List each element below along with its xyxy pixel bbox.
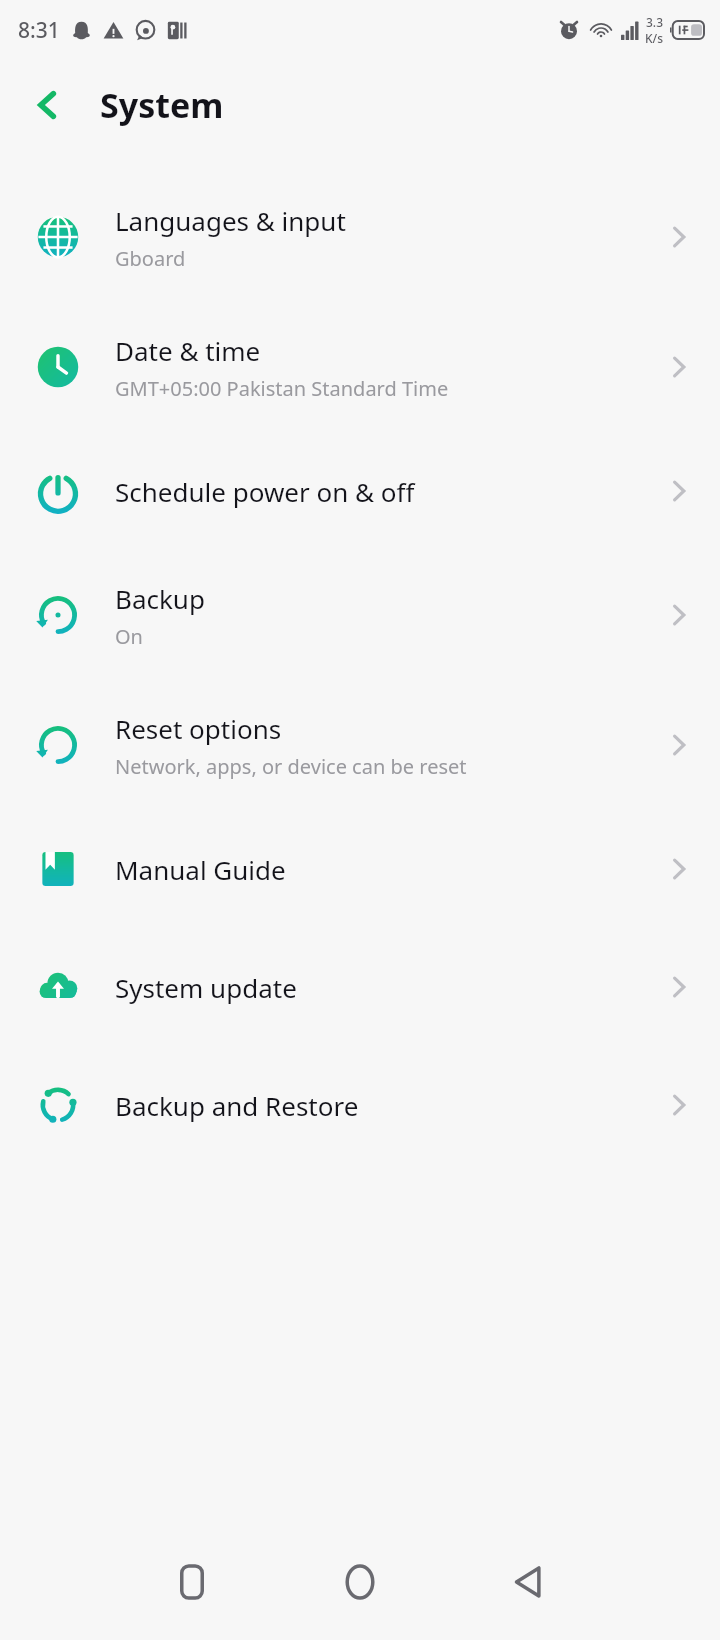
staticText: Languages & input bbox=[115, 203, 346, 238]
button[interactable]: Languages & input bbox=[0, 172, 720, 302]
staticText: Reset options bbox=[115, 711, 282, 746]
staticText: Network, apps, or device can be reset bbox=[115, 753, 467, 780]
staticText: On bbox=[115, 623, 143, 650]
staticText: 3.3 bbox=[646, 14, 663, 30]
staticText: Backup bbox=[115, 581, 205, 616]
button[interactable]: Backup bbox=[0, 550, 720, 680]
button[interactable]: System update bbox=[0, 928, 720, 1046]
staticText: Schedule power on & off bbox=[115, 474, 415, 509]
staticText: 8:31 bbox=[18, 16, 60, 45]
button[interactable]: Schedule power on & off bbox=[0, 432, 720, 550]
staticText: System bbox=[100, 82, 224, 128]
staticText: Manual Guide bbox=[115, 852, 286, 887]
button[interactable]: Date & time bbox=[0, 302, 720, 432]
button[interactable]: Recents bbox=[108, 1532, 276, 1632]
button[interactable]: Backup and Restore bbox=[0, 1046, 720, 1164]
staticText: K/s bbox=[645, 30, 664, 46]
button[interactable]: Back bbox=[444, 1532, 612, 1632]
staticText: Backup and Restore bbox=[115, 1088, 359, 1123]
button[interactable]: Manual Guide bbox=[0, 810, 720, 928]
button[interactable]: Home bbox=[276, 1532, 444, 1632]
staticText: System update bbox=[115, 970, 297, 1005]
staticText: Date & time bbox=[115, 333, 261, 368]
staticText: Gboard bbox=[115, 245, 186, 272]
button[interactable]: Reset options bbox=[0, 680, 720, 810]
staticText: GMT+05:00 Pakistan Standard Time bbox=[115, 375, 449, 402]
button[interactable]: Back bbox=[20, 77, 76, 133]
